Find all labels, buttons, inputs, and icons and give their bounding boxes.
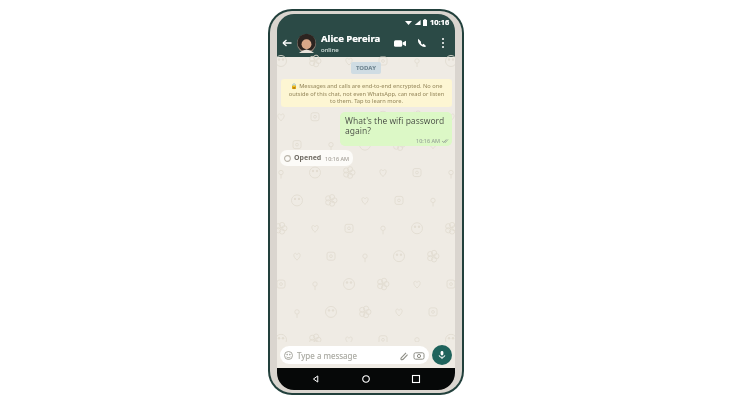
- button[interactable]: Attach: [397, 349, 409, 361]
- staticText: 10:16 AM: [416, 137, 440, 144]
- button[interactable]: What's the wifi password again?: [340, 112, 452, 146]
- button[interactable]: 🔒 Messages and calls are end-to-end encr…: [281, 79, 452, 107]
- button[interactable]: Home: [355, 368, 377, 390]
- staticText: Opened: [294, 153, 322, 163]
- button[interactable]: Back: [277, 33, 297, 53]
- button[interactable]: Video call: [389, 32, 411, 54]
- staticText: 10:16: [430, 17, 450, 27]
- button[interactable]: Alice Pereira: [297, 29, 389, 57]
- staticText: What's the wifi password again?: [345, 115, 448, 137]
- staticText: Alice Pereira: [321, 32, 381, 45]
- button[interactable]: Back: [305, 368, 327, 390]
- staticText: Type a message: [297, 350, 358, 361]
- button[interactable]: Voice message: [432, 345, 452, 365]
- button[interactable]: Recent apps: [405, 368, 427, 390]
- staticText: 🔒 Messages and calls are end-to-end encr…: [287, 82, 446, 104]
- staticText: TODAY: [356, 64, 376, 72]
- button[interactable]: Call: [411, 32, 433, 54]
- button[interactable]: Type a message: [280, 346, 429, 364]
- staticText: 10:16 AM: [325, 155, 349, 162]
- button[interactable]: More options: [433, 33, 453, 53]
- button[interactable]: Opened: [280, 150, 353, 166]
- button[interactable]: Camera: [412, 349, 425, 362]
- staticText: online: [321, 46, 339, 54]
